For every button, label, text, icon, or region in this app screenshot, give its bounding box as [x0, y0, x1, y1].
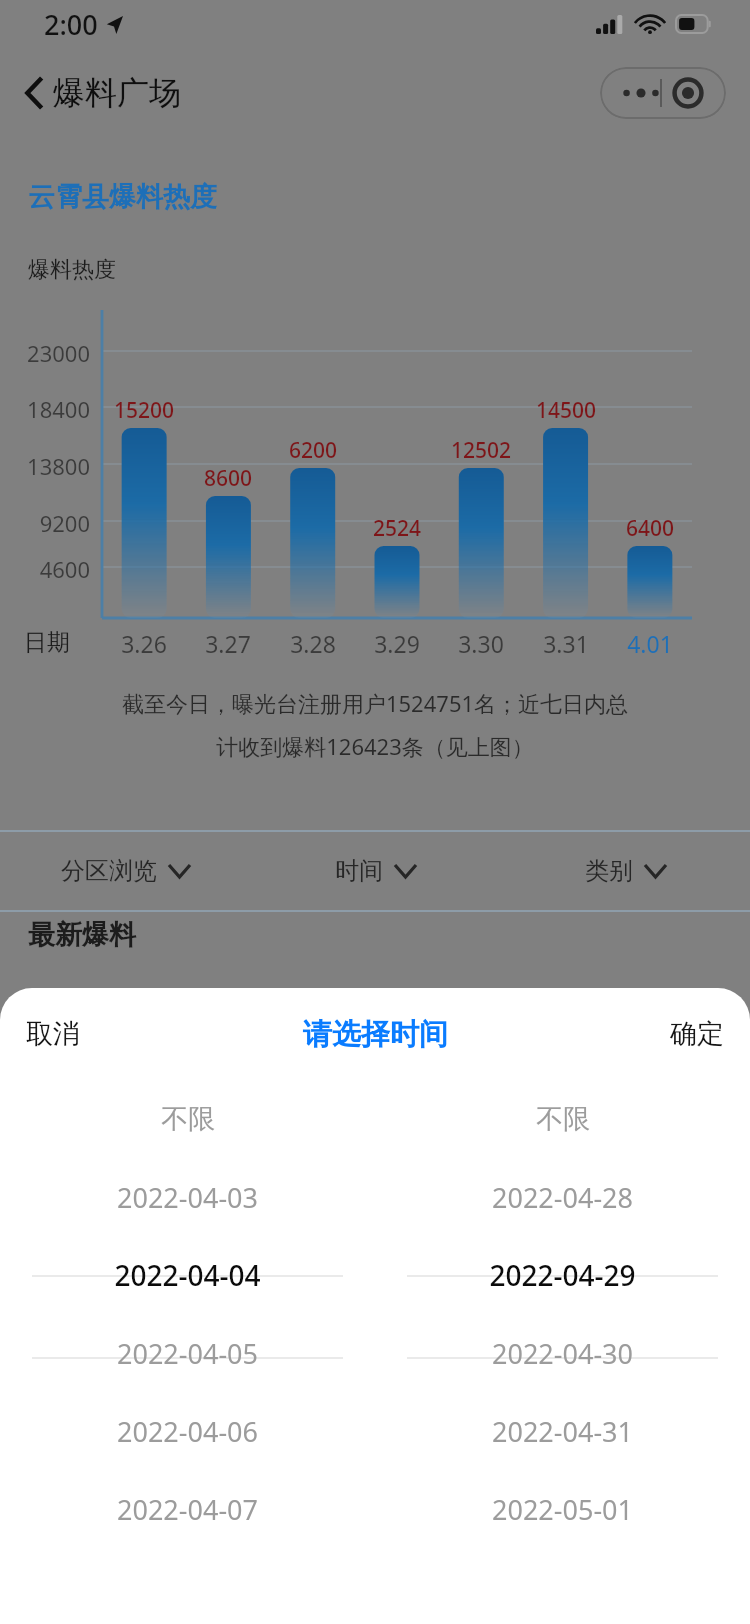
staticText: 2022-05-01: [492, 1491, 633, 1528]
staticText: 2022-04-29: [489, 1256, 636, 1294]
staticText: 2022-04-03: [117, 1179, 258, 1216]
staticText: 3.31: [516, 628, 616, 659]
staticText: 2524: [347, 514, 447, 543]
staticText: 18400: [0, 394, 90, 424]
staticText: 截至今日，曝光台注册用户1524751名；近七日内总 计收到爆料126423条（…: [40, 688, 710, 761]
staticText: 请选择时间: [303, 1016, 448, 1053]
staticText: 12502: [431, 436, 531, 465]
staticText: 2022-04-28: [492, 1179, 633, 1216]
button[interactable]: 取消: [0, 1003, 106, 1065]
button[interactable]: 类别: [500, 832, 750, 910]
button[interactable]: 2022-04-29: [375, 1236, 750, 1314]
staticText: 23000: [0, 338, 90, 368]
button[interactable]: 2022-04-28: [375, 1158, 750, 1236]
staticText: 3.26: [94, 628, 194, 659]
button[interactable]: 2022-04-04: [0, 1236, 375, 1314]
staticText: 日期: [24, 628, 70, 657]
staticText: 4.01: [600, 628, 700, 659]
staticText: 类别: [585, 856, 633, 886]
staticText: 15200: [94, 396, 194, 425]
staticText: 2022-04-06: [117, 1413, 258, 1450]
button[interactable]: 2022-04-03: [0, 1158, 375, 1236]
staticText: 3.30: [431, 628, 531, 659]
staticText: 最新爆料: [28, 918, 136, 952]
staticText: 爆料热度: [28, 256, 116, 284]
staticText: 分区浏览: [61, 856, 157, 886]
staticText: 6200: [263, 436, 363, 465]
button[interactable]: 分区浏览: [0, 832, 250, 910]
staticText: 2022-04-04: [114, 1256, 261, 1294]
staticText: 8600: [178, 464, 278, 493]
button[interactable]: 时间: [250, 832, 500, 910]
staticText: 确定: [670, 1017, 724, 1051]
staticText: 3.28: [263, 628, 363, 659]
button[interactable]: 不限: [0, 1080, 375, 1158]
button[interactable]: Menu: [600, 67, 726, 119]
staticText: 14500: [516, 396, 616, 425]
staticText: 不限: [161, 1102, 215, 1136]
staticText: 3.29: [347, 628, 447, 659]
button[interactable]: 2022-04-06: [0, 1392, 375, 1470]
staticText: 6400: [600, 514, 700, 543]
button[interactable]: 2022-04-07: [0, 1470, 375, 1548]
staticText: 爆料广场: [53, 73, 181, 113]
staticText: 时间: [335, 856, 383, 886]
staticText: 2022-04-30: [492, 1335, 633, 1372]
button[interactable]: 2022-04-05: [0, 1314, 375, 1392]
staticText: 取消: [26, 1017, 80, 1051]
staticText: 2022-04-07: [117, 1491, 258, 1528]
staticText: 4600: [0, 554, 90, 584]
button[interactable]: 不限: [375, 1080, 750, 1158]
staticText: 2:00: [44, 6, 98, 43]
staticText: 2022-04-05: [117, 1335, 258, 1372]
staticText: 不限: [536, 1102, 590, 1136]
staticText: 13800: [0, 451, 90, 481]
staticText: 3.27: [178, 628, 278, 659]
button[interactable]: 2022-04-30: [375, 1314, 750, 1392]
staticText: 2022-04-31: [492, 1413, 633, 1450]
button[interactable]: 确定: [644, 1003, 750, 1065]
button[interactable]: 2022-04-31: [375, 1392, 750, 1470]
staticText: 云霄县爆料热度: [28, 180, 217, 214]
button[interactable]: Back: [20, 65, 187, 121]
button[interactable]: 2022-05-01: [375, 1470, 750, 1548]
staticText: 9200: [0, 508, 90, 538]
